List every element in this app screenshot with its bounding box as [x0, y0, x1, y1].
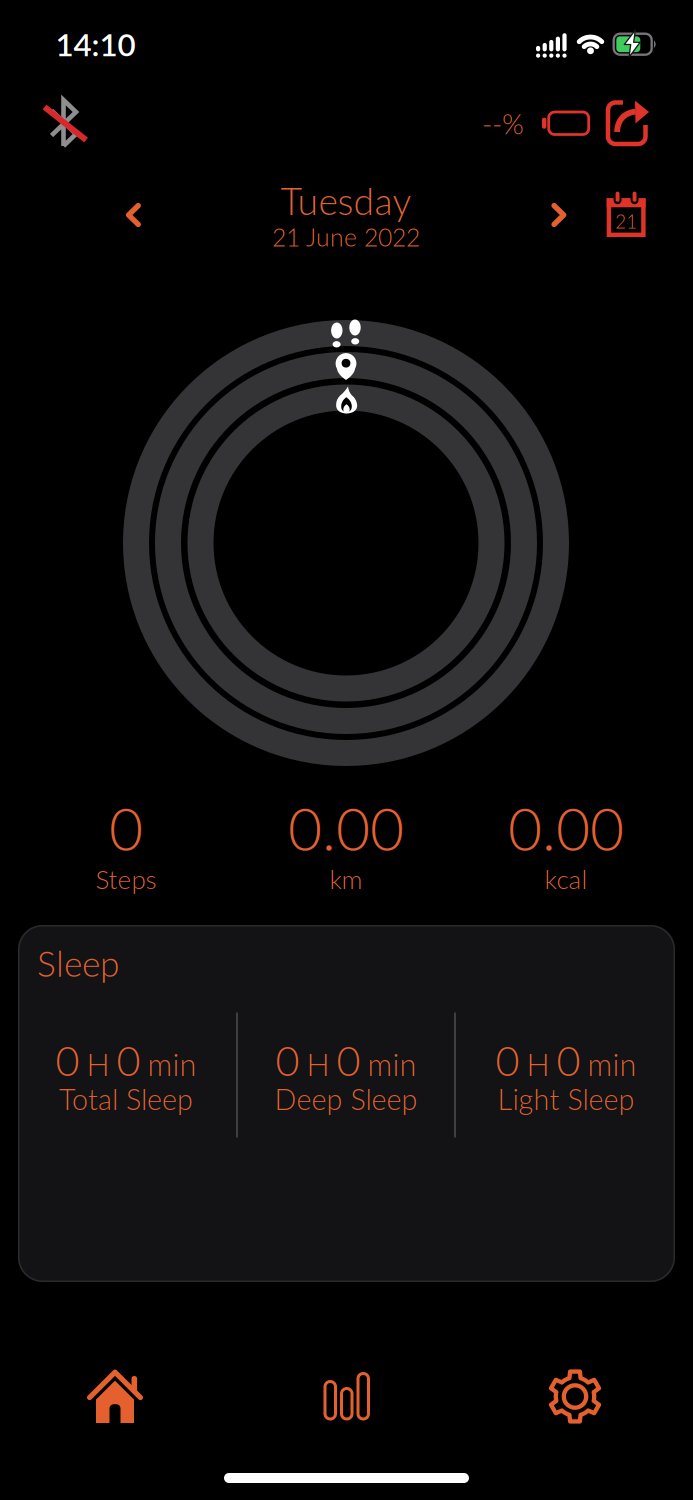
button[interactable]: Share	[597, 94, 651, 154]
staticText: 0	[275, 1035, 299, 1085]
button[interactable]: Settings	[515, 1356, 635, 1436]
staticText: --%	[482, 107, 524, 140]
staticText: Deep Sleep	[274, 1082, 417, 1116]
staticText: 0	[116, 1035, 140, 1085]
staticText: Tuesday	[280, 178, 411, 223]
staticText: 0.00	[288, 793, 404, 863]
staticText: 21	[615, 210, 637, 232]
staticText: min	[587, 1046, 636, 1082]
staticText: Sleep	[37, 942, 119, 984]
button[interactable]: Home	[55, 1357, 175, 1437]
staticText: 0	[495, 1035, 519, 1085]
staticText: min	[367, 1046, 416, 1082]
staticText: H	[86, 1046, 109, 1082]
staticText: Steps	[95, 863, 156, 895]
staticText: 14:10	[55, 25, 135, 63]
staticText: H	[526, 1046, 549, 1082]
button[interactable]: Statistics	[286, 1356, 406, 1436]
button[interactable]: Previous day	[113, 195, 153, 235]
staticText: min	[147, 1046, 196, 1082]
staticText: 0.00	[508, 793, 624, 863]
staticText: Total Sleep	[59, 1082, 193, 1116]
staticText: H	[306, 1046, 329, 1082]
button[interactable]: Bluetooth	[34, 93, 92, 153]
button[interactable]: Calendar	[601, 187, 651, 243]
staticText: 0	[336, 1035, 360, 1085]
staticText: 0	[556, 1035, 580, 1085]
staticText: 0	[109, 793, 143, 863]
staticText: km	[329, 863, 362, 895]
button[interactable]: Next day	[539, 195, 579, 235]
staticText: Light Sleep	[497, 1082, 634, 1116]
staticText: 21 June 2022	[272, 222, 420, 252]
staticText: kcal	[544, 863, 587, 895]
staticText: 0	[55, 1035, 79, 1085]
